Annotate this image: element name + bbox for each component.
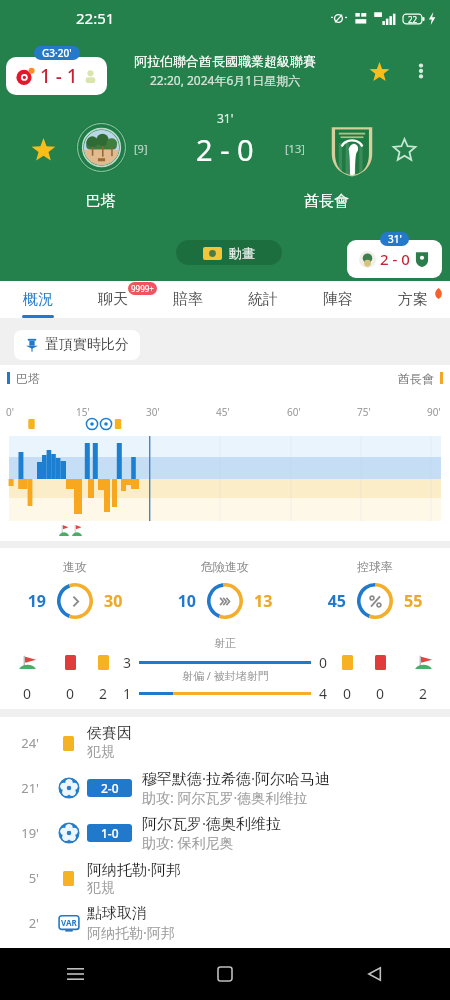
button[interactable]: Back [354, 953, 396, 995]
staticText: 0 [54, 684, 86, 703]
staticText: 方案 [398, 290, 428, 309]
button[interactable]: 置頂實時比分 [14, 330, 140, 360]
button[interactable]: 概況 [0, 281, 75, 318]
staticText: 射正 [214, 636, 236, 650]
staticText: 0 [330, 684, 364, 703]
staticText: 75' [357, 405, 371, 419]
staticText: 巴塔 [16, 371, 40, 386]
staticText: 2' [14, 914, 39, 932]
staticText: 聊天 [98, 290, 128, 309]
button[interactable]: More options [407, 57, 435, 85]
button[interactable]: 賠率 [150, 281, 225, 318]
staticText: 19' [14, 824, 39, 842]
staticText: 9999+ [131, 283, 154, 294]
staticText: 2 - 0 [380, 249, 410, 269]
button[interactable]: 聊天 [75, 281, 150, 318]
staticText: 點球取消 [87, 904, 147, 923]
button[interactable]: Recents [54, 953, 96, 995]
staticText: 賠率 [173, 290, 203, 309]
button[interactable]: Favourite [365, 57, 393, 85]
button[interactable]: 21' [0, 765, 450, 810]
staticText: 0 [364, 684, 396, 703]
staticText: 統計 [248, 290, 278, 309]
staticText: 2 - 0 [196, 130, 254, 169]
staticText: 陣容 [323, 290, 353, 309]
staticText: 22:51 [76, 8, 115, 28]
staticText: 酋長會 [304, 192, 349, 211]
button[interactable]: 19' [0, 810, 450, 855]
staticText: 4 [316, 684, 330, 703]
staticText: 30 [104, 590, 134, 612]
staticText: 犯規 [87, 743, 115, 761]
button[interactable]: Favourite away team [391, 136, 417, 162]
button[interactable]: Home [204, 953, 246, 995]
staticText: 13 [254, 590, 284, 612]
staticText: [9] [134, 141, 148, 156]
staticText: 3 [120, 653, 134, 672]
staticText: 動畫 [229, 245, 255, 261]
staticText: 控球率 [357, 559, 393, 574]
staticText: 2 [86, 684, 120, 703]
staticText: 1-0 [101, 825, 119, 841]
staticText: 1 [120, 684, 134, 703]
staticText: 45' [216, 405, 230, 419]
staticText: 31' [388, 232, 402, 246]
staticText: 助攻: 阿尔瓦罗·德奥利维拉 [142, 788, 308, 807]
button[interactable]: 5' [0, 855, 450, 900]
staticText: 概況 [23, 290, 53, 309]
staticText: 阿尔瓦罗·德奥利维拉 [142, 813, 282, 833]
staticText: 24' [14, 734, 39, 752]
staticText: 巴塔 [86, 192, 116, 211]
staticText: 2 [396, 684, 450, 703]
staticText: 侯賽因 [87, 724, 132, 743]
button[interactable]: 陣容 [300, 281, 375, 318]
staticText: [13] [285, 141, 305, 156]
button[interactable]: 方案 [375, 281, 450, 318]
staticText: 10 [166, 590, 196, 612]
staticText: VAR [61, 917, 77, 928]
staticText: 阿纳托勒·阿邦 [87, 923, 175, 942]
staticText: 21' [14, 779, 39, 797]
button[interactable]: 1 - 1 [6, 57, 107, 95]
button[interactable]: Favourite home team [30, 136, 56, 162]
staticText: 置頂實時比分 [45, 336, 129, 354]
button[interactable]: 24' [0, 720, 450, 765]
staticText: 30' [146, 405, 160, 419]
staticText: 助攻: 保利尼奥 [142, 833, 234, 852]
staticText: 31' [217, 110, 234, 126]
button[interactable]: 統計 [225, 281, 300, 318]
staticText: 0 [316, 653, 330, 672]
staticText: G3·20' [42, 46, 72, 60]
staticText: 犯規 [87, 879, 115, 897]
staticText: 5' [14, 869, 39, 887]
staticText: 進攻 [63, 559, 87, 574]
staticText: 0 [0, 684, 54, 703]
staticText: 45 [316, 590, 346, 612]
staticText: 90' [427, 405, 441, 419]
staticText: 穆罕默德·拉希德·阿尔哈马迪 [142, 768, 331, 788]
staticText: 射偏 / 被封堵射門 [182, 668, 269, 683]
staticText: 22:20, 2024年6月1日星期六 [150, 72, 301, 88]
staticText: 15' [76, 405, 90, 419]
staticText: 60' [287, 405, 301, 419]
button[interactable]: 2 - 0 [347, 240, 442, 278]
staticText: 2-0 [101, 780, 119, 796]
button[interactable]: 動畫 [176, 240, 282, 265]
staticText: 阿拉伯聯合酋長國職業超級聯賽 [134, 53, 316, 69]
staticText: 酋長會 [398, 371, 434, 386]
staticText: 阿纳托勒·阿邦 [87, 859, 182, 879]
staticText: 危險進攻 [201, 559, 249, 574]
staticText: 1 - 1 [40, 63, 78, 89]
button[interactable]: 2' [0, 900, 450, 945]
staticText: 22 [408, 14, 418, 25]
staticText: 0' [6, 405, 14, 419]
staticText: 19 [16, 590, 46, 612]
staticText: 55 [404, 590, 434, 612]
